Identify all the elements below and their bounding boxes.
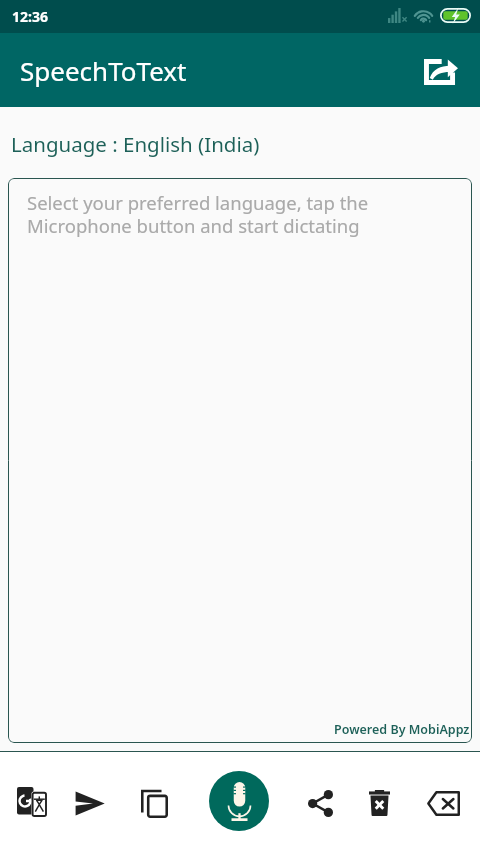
staticText: Select your preferred language, tap the … [27, 190, 369, 238]
button[interactable]: Select your preferred language, tap the … [8, 178, 472, 743]
button[interactable]: Backspace [419, 779, 467, 827]
button[interactable]: Share [296, 779, 344, 827]
staticText: SpeechToText [20, 53, 187, 88]
button[interactable]: Language : English (India) [0, 130, 480, 158]
button[interactable]: Microphone [209, 771, 269, 831]
button[interactable]: Translate [8, 778, 56, 826]
button[interactable]: Delete [355, 779, 403, 827]
button[interactable]: Share [419, 50, 463, 94]
staticText: 12:36 [12, 7, 48, 26]
staticText: Powered By MobiAppz [334, 721, 470, 738]
button[interactable]: Send [66, 779, 114, 827]
staticText: Language : English (India) [11, 130, 260, 158]
button[interactable]: Copy [130, 779, 178, 827]
